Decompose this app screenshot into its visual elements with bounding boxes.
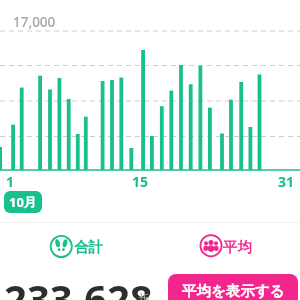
staticText: 1 [6,172,15,191]
staticText: 合計 [74,238,103,256]
staticText: 平均を表示する [182,282,285,300]
button[interactable]: 平均 [194,232,252,261]
staticText: 17,000 [13,13,56,31]
staticText: 233,628 [4,271,153,300]
staticText: 15 [132,172,149,191]
staticText: 歩 [138,290,150,300]
staticText: 平均 [223,238,252,256]
staticText: 31 [278,172,295,191]
button[interactable]: 合計 [41,232,103,261]
button[interactable]: 平均を表示する [168,274,298,300]
staticText: 10月 [9,193,37,211]
button[interactable]: 10月 [4,191,42,213]
